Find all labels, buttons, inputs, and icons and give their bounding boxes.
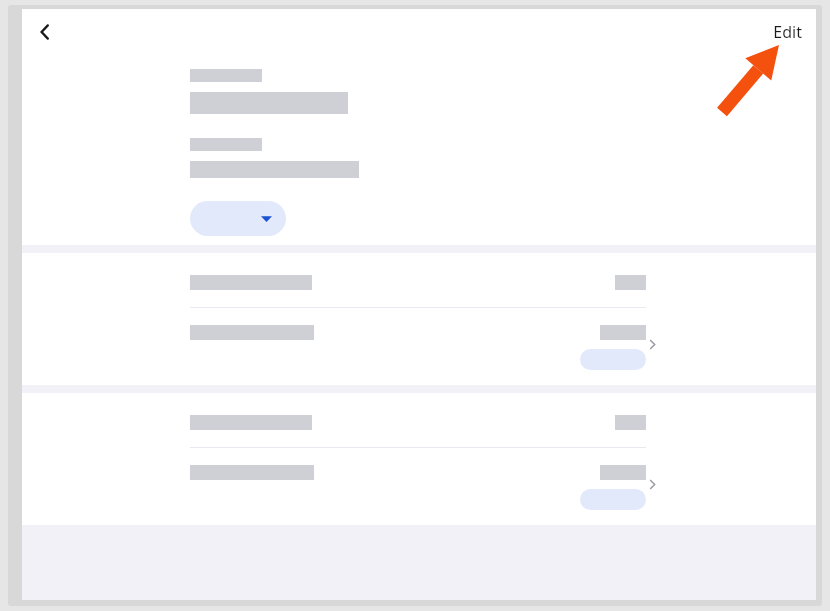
button[interactable]: Open details: [643, 335, 661, 353]
button[interactable]: [190, 275, 646, 290]
button[interactable]: [190, 415, 646, 430]
button[interactable]: Select option: [190, 201, 286, 236]
staticText: Edit: [773, 21, 802, 43]
button[interactable]: [190, 465, 646, 480]
button[interactable]: Back: [28, 15, 62, 49]
button[interactable]: Edit: [767, 17, 808, 47]
button[interactable]: [190, 325, 646, 340]
button[interactable]: Open details: [643, 475, 661, 493]
